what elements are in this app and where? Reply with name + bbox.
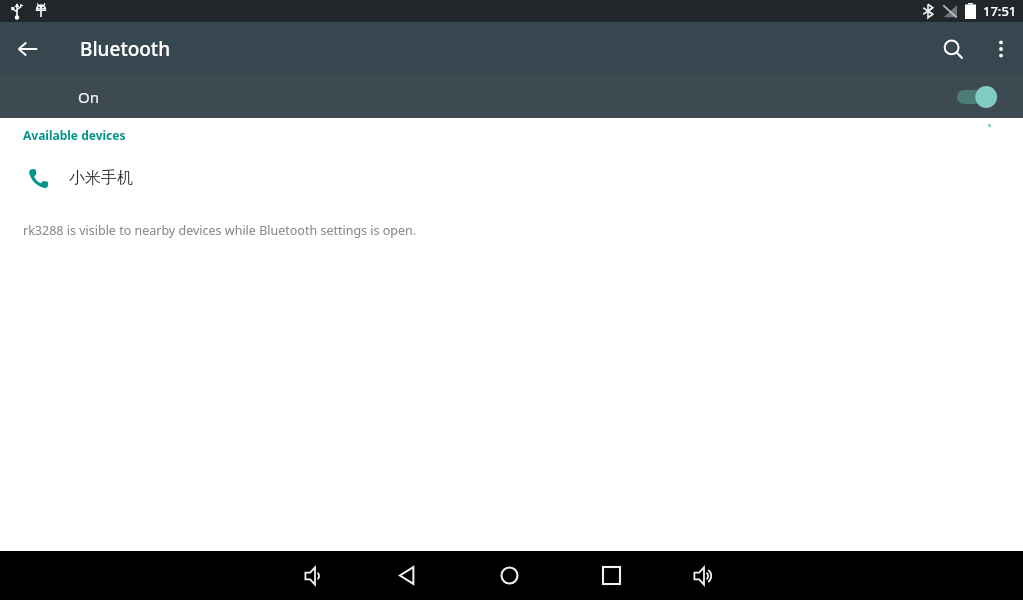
button[interactable]: Home [479,551,539,600]
button[interactable]: Back [377,551,437,600]
staticText: Available devices [23,127,126,143]
button[interactable]: Volume down [285,551,345,600]
button[interactable]: More options [979,27,1023,71]
button[interactable]: Recent apps [581,551,641,600]
staticText: Bluetooth [80,36,171,62]
staticText: 17:51 [983,2,1017,20]
button[interactable]: Navigate up [0,22,56,75]
other: Bluetooth on [957,83,1001,111]
staticText: 小米手机 [69,168,133,188]
staticText: On [78,87,99,107]
staticText: rk3288 is visible to nearby devices whil… [23,222,417,239]
button[interactable]: On [0,75,1023,118]
button[interactable]: 小米手机 [0,154,1023,202]
button[interactable]: Volume up [674,551,734,600]
button[interactable]: Search [927,23,979,75]
